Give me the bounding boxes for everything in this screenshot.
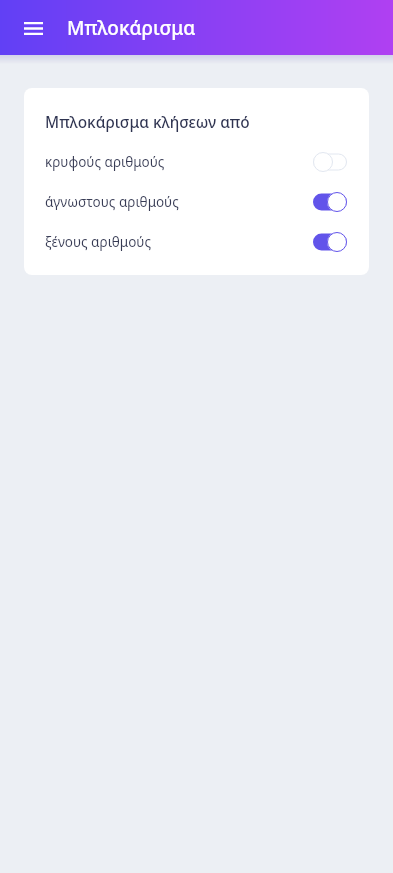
- button[interactable]: άγνωστους αριθμούς: [24, 182, 369, 222]
- staticText: άγνωστους αριθμούς: [45, 193, 313, 211]
- button[interactable]: Menu: [12, 7, 54, 49]
- button[interactable]: ξένους αριθμούς: [24, 222, 369, 262]
- staticText: ξένους αριθμούς: [45, 233, 313, 251]
- staticText: κρυφούς αριθμούς: [45, 153, 313, 171]
- button[interactable]: κρυφούς αριθμούς: [24, 142, 369, 182]
- staticText: Μπλοκάρισμα: [67, 15, 196, 41]
- staticText: Μπλοκάρισμα κλήσεων από: [45, 112, 250, 133]
